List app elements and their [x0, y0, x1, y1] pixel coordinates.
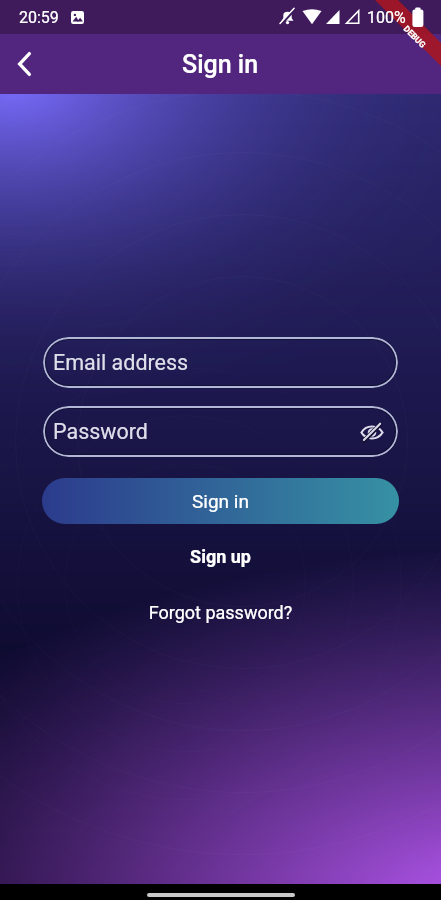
- button[interactable]: Sign up: [0, 546, 441, 567]
- staticText: Sign in: [182, 50, 259, 79]
- staticText: Password: [53, 419, 148, 444]
- staticText: Sign up: [0, 546, 441, 567]
- staticText: Forgot password?: [0, 602, 441, 623]
- button[interactable]: Sign in: [42, 478, 399, 524]
- button[interactable]: Back: [0, 40, 48, 88]
- button[interactable]: Forgot password?: [0, 602, 441, 623]
- staticText: Email address: [53, 350, 189, 375]
- staticText: DEBUG: [402, 24, 428, 50]
- staticText: Sign in: [192, 490, 249, 512]
- button[interactable]: Show password: [355, 415, 389, 449]
- staticText: 100%: [367, 8, 406, 27]
- button[interactable]: Password: [43, 406, 398, 457]
- staticText: 20:59: [19, 8, 59, 27]
- button[interactable]: Email address: [43, 337, 398, 388]
